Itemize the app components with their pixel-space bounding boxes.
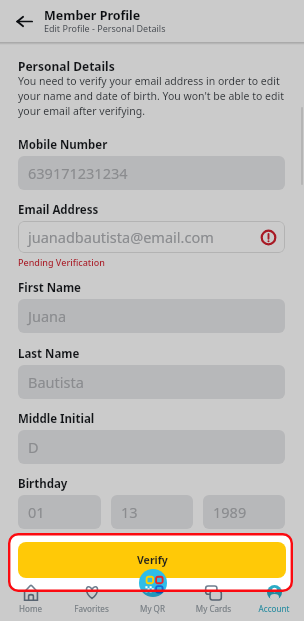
staticText: Bautista [28,372,84,392]
button[interactable]: 13 [111,495,193,529]
staticText: Favorites [61,603,122,614]
staticText: You need to verify your email address in… [18,74,285,118]
staticText: Juana [28,306,67,326]
staticText: 13 [121,502,138,522]
staticText: Member Profile [44,7,141,24]
button[interactable]: 639171231234 [18,156,285,190]
button[interactable]: My Cards [183,578,244,621]
staticText: Mobile Number [18,137,108,153]
button[interactable]: Account [244,578,304,621]
staticText: 01 [28,502,45,522]
button[interactable]: Bautista [18,365,285,399]
staticText: Last Name [18,346,80,362]
staticText: juanadbautista@email.com [28,227,214,247]
staticText: My Cards [183,603,244,614]
other: My QR [144,584,161,601]
staticText: Personal Details [18,58,115,74]
button[interactable]: Back [7,4,41,38]
button[interactable]: juanadbautista@email.com [18,221,285,253]
staticText: Account [244,603,304,614]
staticText: 1989 [213,502,247,522]
button[interactable]: Juana [18,299,285,333]
staticText: Edit Profile - Personal Details [44,22,166,34]
staticText: Middle Initial [18,411,95,427]
button[interactable]: Favorites [61,578,122,621]
button[interactable]: Home [0,578,61,621]
staticText: Pending Verification [18,256,105,268]
staticText: Home [0,603,61,614]
staticText: First Name [18,280,81,296]
button[interactable]: Verify [18,542,286,578]
staticText: My QR [122,603,183,614]
button[interactable]: 01 [18,495,101,529]
button[interactable]: 1989 [203,495,285,529]
staticText: Verify [137,553,168,567]
button[interactable]: My QR [122,578,183,621]
staticText: Email Address [18,202,99,218]
staticText: 639171231234 [28,163,128,183]
staticText: D [28,437,39,457]
staticText: Birthday [18,476,68,492]
